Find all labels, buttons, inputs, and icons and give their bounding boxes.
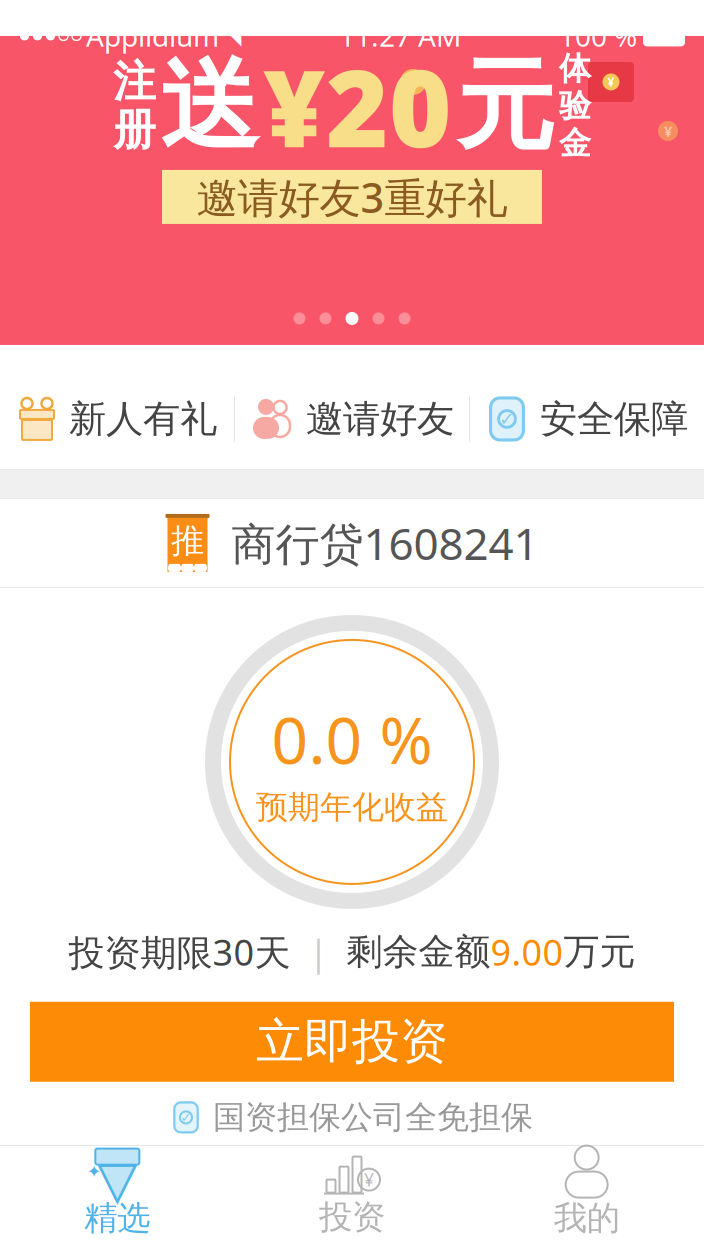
staticText: ◥ [224,23,241,49]
staticText: ¥ [607,74,614,90]
staticText: 验 [559,86,591,126]
staticText: ¥ [407,69,418,94]
staticText: ▽ [97,1149,138,1210]
staticText: 安全保障 [540,396,688,442]
staticText: 邀请好友3重好礼 [196,169,507,224]
button[interactable]: ¥ [235,1146,469,1240]
staticText: 金 [559,124,591,163]
staticText: 注 [113,55,156,108]
staticText: | [290,928,346,976]
staticText: 100 % [559,17,637,55]
staticText: 新人有礼 [69,396,217,442]
staticText: 投资 [319,1197,385,1237]
staticText: 元 [456,45,555,166]
staticText: ▼ [97,1149,138,1210]
staticText: 预期年化收益 [256,788,448,827]
staticText: Applidium [86,17,219,55]
button[interactable]: 我的 [469,1146,704,1240]
button[interactable]: ✓ [470,369,704,469]
staticText: 送 [160,45,259,166]
button[interactable]: ▼ [0,1146,235,1240]
staticText: 邀请好友 [306,396,454,442]
staticText: 9.00 [490,928,563,976]
button[interactable]: 新人有礼 [0,369,234,469]
staticText: 册 [113,104,156,156]
staticText: 万元 [563,930,635,974]
staticText: 国资担保公司全免担保 [213,1098,533,1137]
staticText: 0.0 % [271,697,432,782]
staticText: ✓ [499,408,515,430]
staticText: 我的 [554,1198,620,1238]
staticText: 立即投资 [256,1012,448,1071]
button[interactable]: 推 [0,499,704,587]
staticText: ✓ [180,1110,191,1125]
staticText: ¥ [664,121,672,141]
staticText: ¥20 [263,35,452,177]
staticText: ✦ [87,1162,102,1181]
button[interactable]: 立即投资 [30,1002,674,1082]
staticText: 精选 [84,1198,150,1238]
staticText: ¥ [364,1168,374,1191]
staticText: 推 [171,520,204,561]
staticText: 剩余金额 [346,930,490,974]
staticText: 体 [559,49,591,88]
button[interactable]: 邀请好友 [235,369,469,469]
staticText: 投资期限30天 [68,928,290,976]
staticText: 11:27 AM [339,17,461,55]
staticText: 商行贷1608241 [231,514,538,572]
